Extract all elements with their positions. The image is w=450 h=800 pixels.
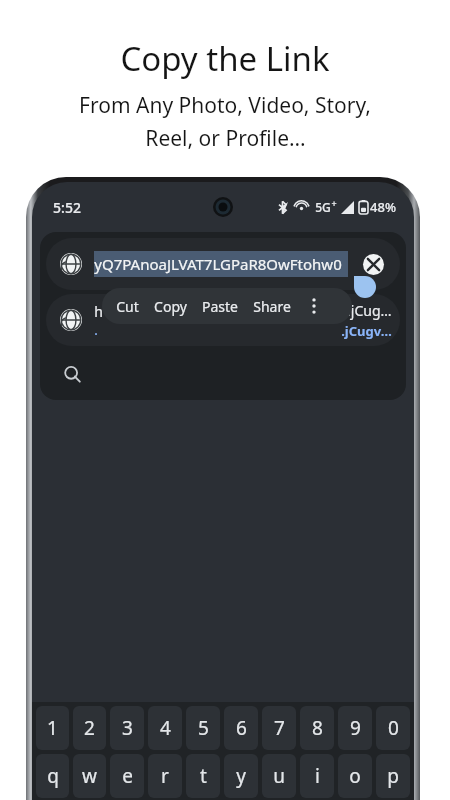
- button[interactable]: e: [110, 754, 144, 798]
- button[interactable]: Paste: [202, 297, 238, 316]
- staticText: Share: [253, 297, 291, 316]
- staticText: Cut: [116, 297, 139, 316]
- button[interactable]: 4: [148, 706, 182, 750]
- staticText: 3: [122, 715, 133, 741]
- button[interactable]: 1: [36, 706, 69, 750]
- staticText: yQ7PAnoaJLVAT7LGPaR8OwFtohw0: [94, 254, 342, 274]
- button[interactable]: u: [262, 754, 296, 798]
- staticText: Paste: [202, 297, 238, 316]
- staticText: 5G: [315, 199, 331, 215]
- staticText: 8: [312, 715, 323, 741]
- button[interactable]: p: [376, 754, 410, 798]
- staticText: .jCugv…: [341, 322, 392, 340]
- button[interactable]: i: [300, 754, 334, 798]
- staticText: e: [122, 763, 133, 789]
- staticText: 2: [84, 715, 95, 741]
- staticText: t: [200, 763, 207, 789]
- button[interactable]: o: [338, 754, 372, 798]
- staticText: h: [94, 302, 103, 321]
- staticText: .: [94, 321, 98, 339]
- staticText: Copy the Link: [120, 36, 330, 81]
- staticText: 7: [274, 715, 285, 741]
- staticText: 6: [236, 715, 247, 741]
- button[interactable]: t: [186, 754, 220, 798]
- staticText: Copy: [154, 297, 187, 316]
- button[interactable]: Copy: [154, 297, 187, 316]
- button[interactable]: q: [36, 754, 69, 798]
- staticText: 1: [47, 715, 58, 741]
- button[interactable]: r: [148, 754, 182, 798]
- button[interactable]: 9: [338, 706, 372, 750]
- button[interactable]: 6: [224, 706, 258, 750]
- staticText: Reel, or Profile…: [145, 124, 306, 153]
- staticText: q: [47, 763, 59, 789]
- button[interactable]: 3: [110, 706, 144, 750]
- staticText: w: [82, 763, 97, 789]
- staticText: "MjCug…: [332, 301, 392, 320]
- staticText: 4: [160, 715, 171, 741]
- button[interactable]: Clear text: [358, 249, 388, 279]
- button[interactable]: Search: [46, 350, 400, 398]
- staticText: 0: [388, 715, 399, 741]
- button[interactable]: Share: [253, 297, 291, 316]
- button[interactable]: y: [224, 754, 258, 798]
- button[interactable]: 2: [73, 706, 106, 750]
- staticText: 48%: [370, 198, 396, 216]
- button[interactable]: Cut: [116, 297, 139, 316]
- button[interactable]: 8: [300, 706, 334, 750]
- button[interactable]: yQ7PAnoaJLVAT7LGPaR8OwFtohw0: [46, 238, 400, 290]
- staticText: 5: [198, 715, 209, 741]
- staticText: From Any Photo, Video, Story,: [79, 91, 371, 120]
- staticText: i: [315, 763, 320, 789]
- staticText: 9: [350, 715, 361, 741]
- button[interactable]: h: [46, 294, 400, 346]
- button[interactable]: 7: [262, 706, 296, 750]
- staticText: +: [331, 197, 337, 209]
- staticText: 5:52: [53, 198, 81, 217]
- button[interactable]: More options: [303, 295, 325, 317]
- staticText: o: [349, 763, 361, 789]
- button[interactable]: 5: [186, 706, 220, 750]
- other: Search: [64, 366, 81, 383]
- staticText: r: [161, 763, 169, 789]
- staticText: y: [236, 763, 246, 789]
- button[interactable]: w: [73, 754, 106, 798]
- staticText: u: [273, 763, 285, 789]
- button[interactable]: 0: [376, 706, 410, 750]
- staticText: p: [387, 763, 399, 789]
